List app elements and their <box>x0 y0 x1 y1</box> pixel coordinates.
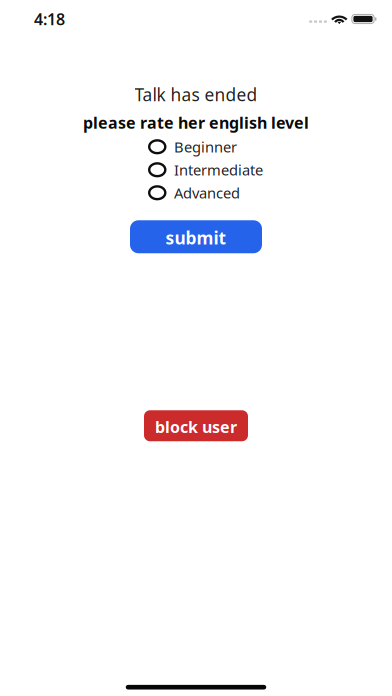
staticText: 4:18 <box>34 8 65 30</box>
button[interactable]: Intermediate <box>148 158 264 181</box>
button[interactable]: block user <box>144 410 248 441</box>
staticText: block user <box>155 416 237 437</box>
staticText: submit <box>165 226 226 249</box>
staticText: Talk has ended <box>134 83 257 106</box>
button[interactable]: Advanced <box>148 181 264 204</box>
staticText: please rate her english level <box>83 112 309 133</box>
button[interactable]: Beginner <box>148 135 264 158</box>
staticText: Advanced <box>174 183 240 202</box>
staticText: Beginner <box>174 137 237 156</box>
button[interactable]: submit <box>130 220 262 253</box>
staticText: Intermediate <box>174 160 263 179</box>
